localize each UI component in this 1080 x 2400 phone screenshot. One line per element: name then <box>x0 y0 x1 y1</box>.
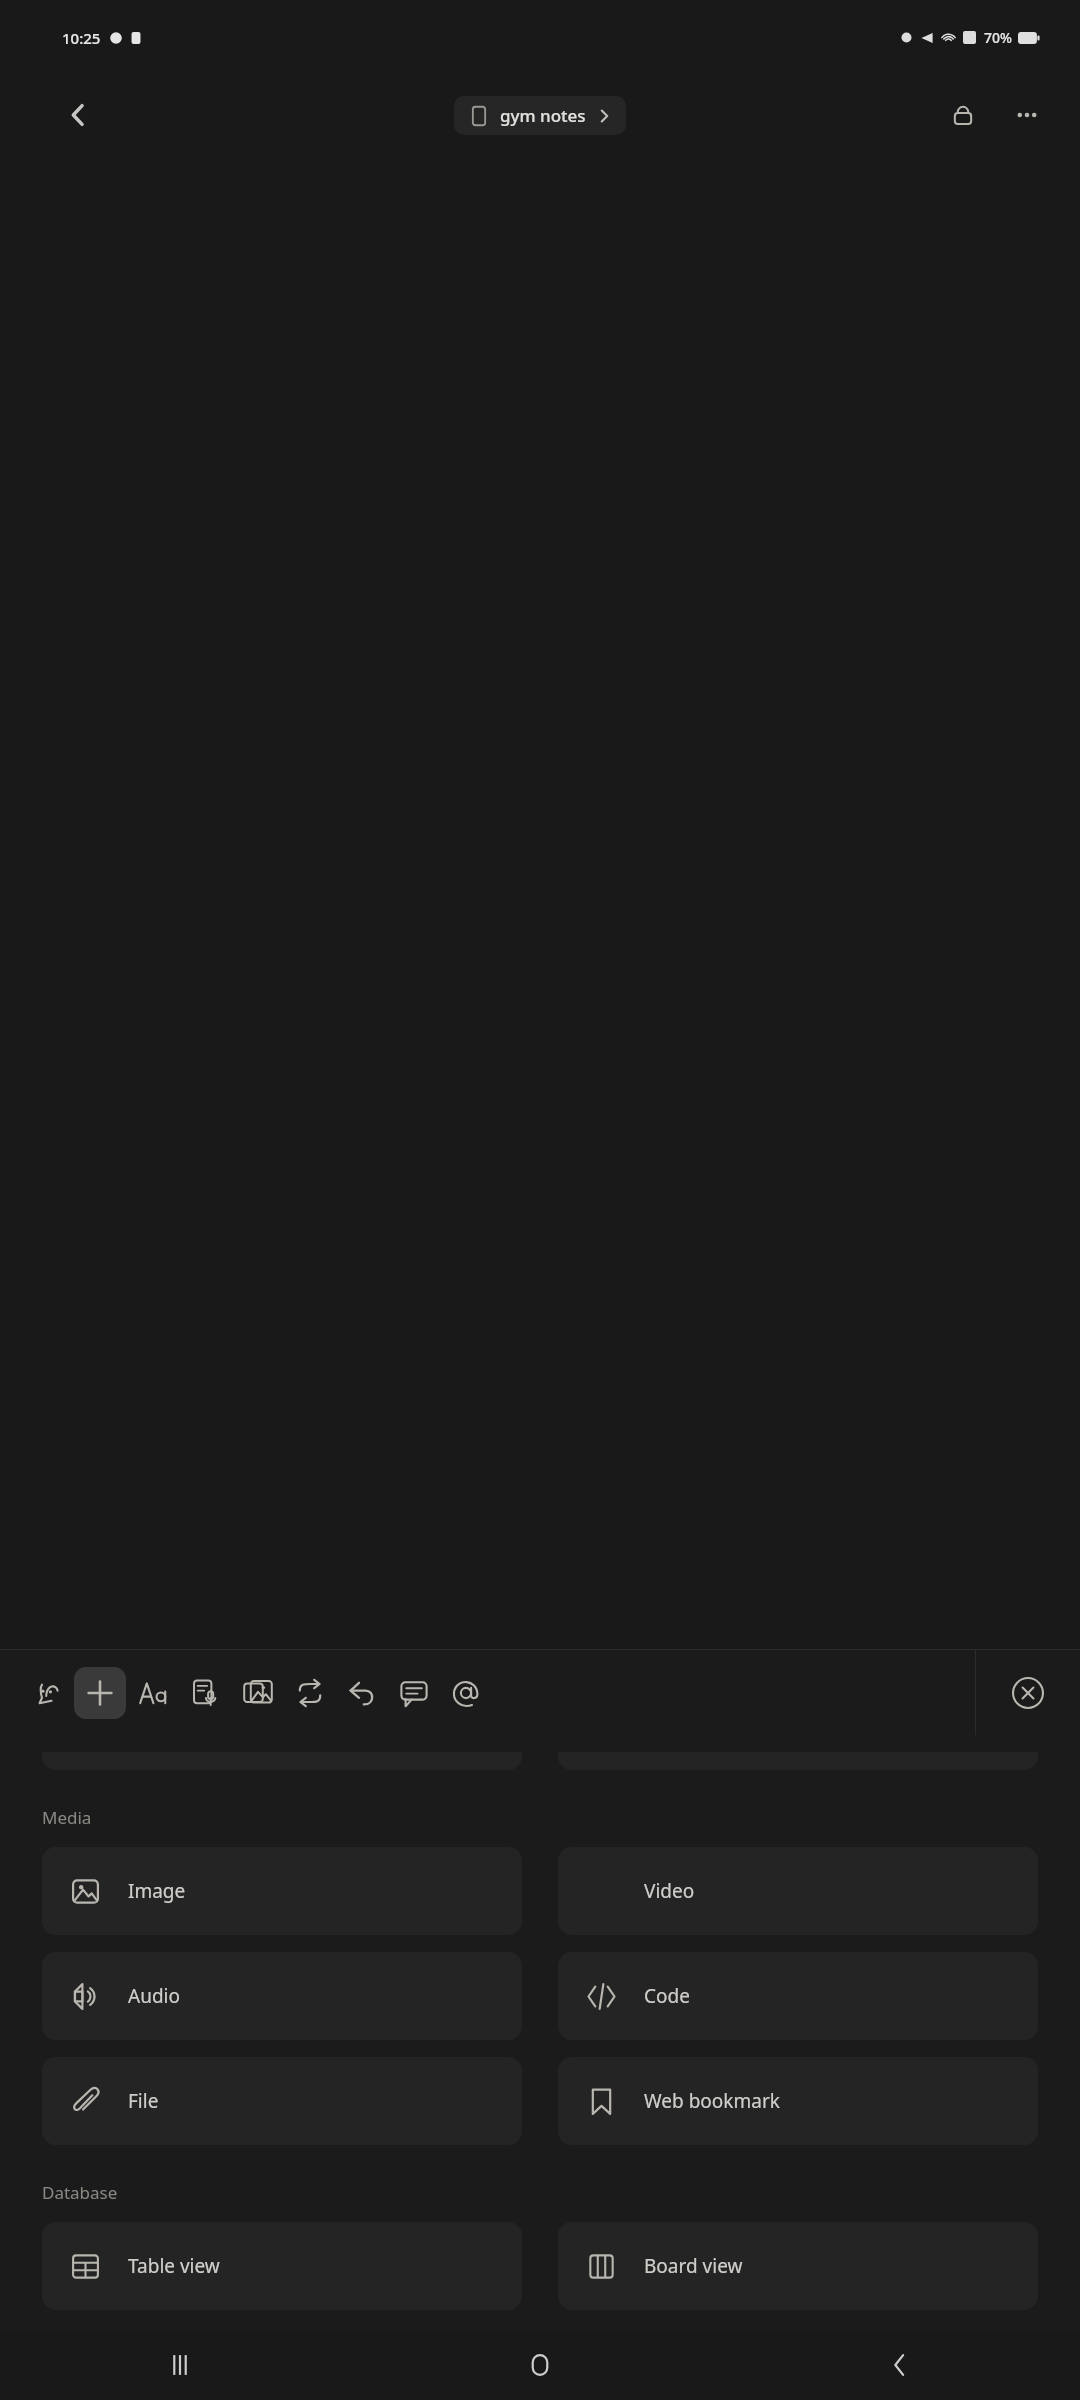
button[interactable]: Draw <box>22 1663 74 1723</box>
staticText: Database <box>42 2181 118 2204</box>
button[interactable]: Board view <box>558 2222 1038 2310</box>
button[interactable]: Code <box>558 1952 1038 2040</box>
button[interactable]: Images <box>232 1663 284 1723</box>
staticText: 10:25 <box>62 28 101 48</box>
staticText: Code <box>644 1983 690 2009</box>
button[interactable]: Close <box>976 1650 1080 1735</box>
button[interactable]: Text format <box>128 1663 180 1723</box>
staticText: 70% <box>984 28 1012 47</box>
button[interactable]: Comment <box>388 1663 440 1723</box>
button[interactable]: Recents <box>0 2330 360 2400</box>
button[interactable]: Web bookmark <box>558 2057 1038 2145</box>
button[interactable]: Home <box>360 2330 720 2400</box>
button[interactable]: Redo <box>284 1663 336 1723</box>
staticText: Board view <box>644 2253 743 2279</box>
button[interactable]: More options <box>998 86 1056 144</box>
button[interactable]: Lock <box>934 86 992 144</box>
staticText: Table view <box>128 2253 220 2279</box>
button[interactable]: Back <box>720 2330 1080 2400</box>
button[interactable]: Mention <box>440 1663 492 1723</box>
button[interactable]: Audio <box>42 1952 522 2040</box>
staticText: Web bookmark <box>644 2088 780 2114</box>
button[interactable]: Voice note <box>180 1663 232 1723</box>
staticText: Media <box>42 1806 92 1829</box>
button[interactable]: gym notes <box>454 96 626 135</box>
button[interactable]: Video <box>558 1847 1038 1935</box>
button[interactable]: Table view <box>42 2222 522 2310</box>
button[interactable]: Insert <box>74 1667 126 1719</box>
button[interactable]: Back <box>50 86 108 144</box>
button[interactable]: File <box>42 2057 522 2145</box>
staticText: gym notes <box>500 104 586 127</box>
staticText: Video <box>644 1878 695 1904</box>
staticText: Audio <box>128 1983 180 2009</box>
staticText: File <box>128 2088 159 2114</box>
button[interactable]: Undo <box>336 1663 388 1723</box>
staticText: Image <box>128 1878 186 1904</box>
button[interactable]: Image <box>42 1847 522 1935</box>
